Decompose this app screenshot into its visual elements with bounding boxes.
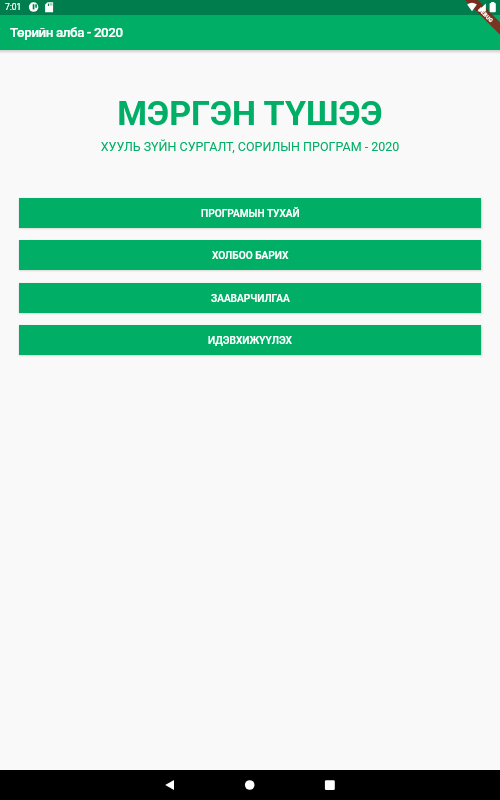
staticText: Төрийн алба - 2020 <box>10 25 123 41</box>
button[interactable]: Back <box>140 770 200 800</box>
staticText: ИДЭВХИЖҮҮЛЭХ <box>208 335 292 347</box>
button[interactable]: Recent apps <box>300 770 360 800</box>
button[interactable]: ИДЭВХИЖҮҮЛЭХ <box>19 325 481 355</box>
staticText: DEBUG <box>477 6 495 24</box>
button[interactable]: Home <box>220 770 280 800</box>
staticText: ЗААВАРЧИЛГАА <box>211 293 290 305</box>
staticText: ХУУЛЬ ЗҮЙН СУРГАЛТ, СОРИЛЫН ПРОГРАМ - 20… <box>0 139 500 154</box>
staticText: ПРОГРАМЫН ТУХАЙ <box>201 208 300 220</box>
button[interactable]: ХОЛБОО БАРИХ <box>19 240 481 270</box>
button[interactable]: ЗААВАРЧИЛГАА <box>19 283 481 313</box>
staticText: ХОЛБОО БАРИХ <box>212 250 289 262</box>
button[interactable]: ПРОГРАМЫН ТУХАЙ <box>19 198 481 228</box>
staticText: МЭРГЭН ТҮШЭЭ <box>0 93 500 133</box>
staticText: 7:01 <box>5 2 22 12</box>
